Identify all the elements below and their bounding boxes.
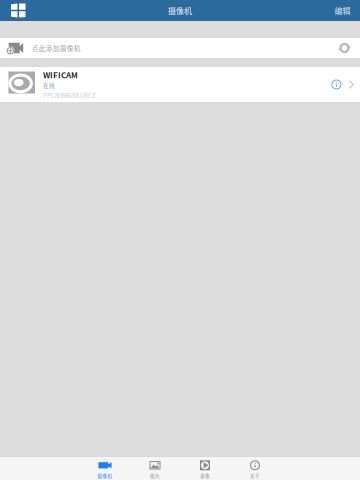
staticText: 摄像机 xyxy=(97,473,112,479)
button[interactable]: WIFICAM xyxy=(0,67,360,102)
staticText: 编辑 xyxy=(334,5,350,16)
button[interactable]: 点此添加摄像机 xyxy=(0,38,360,58)
staticText: 录像 xyxy=(200,473,210,479)
button[interactable]: 编辑 xyxy=(322,0,360,21)
staticText: 点此添加摄像机 xyxy=(32,43,81,53)
staticText: 图片 xyxy=(150,473,160,479)
button[interactable]: 关于 xyxy=(230,457,280,480)
staticText: PPCN366630LGBCZ xyxy=(43,91,96,99)
button[interactable]: 图片 xyxy=(130,457,180,480)
button[interactable]: 录像 xyxy=(180,457,230,480)
staticText: 关于 xyxy=(250,473,260,479)
staticText: WIFICAM xyxy=(43,69,78,81)
staticText: 摄像机 xyxy=(168,5,192,16)
button[interactable]: Layout xyxy=(0,0,39,21)
button[interactable]: 摄像机 xyxy=(80,457,130,480)
staticText: 在线 xyxy=(43,81,55,89)
